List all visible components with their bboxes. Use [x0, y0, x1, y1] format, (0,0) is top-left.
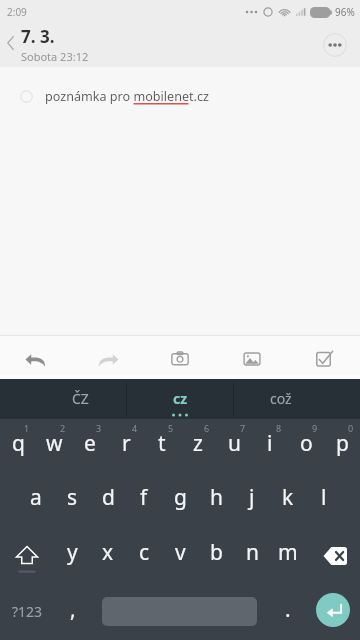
button[interactable]: m	[270, 528, 306, 583]
button[interactable]: což	[233, 379, 360, 419]
button[interactable]: j	[234, 473, 270, 528]
staticText: r	[122, 429, 131, 458]
staticText: i	[267, 429, 273, 458]
button[interactable]: n	[234, 528, 270, 583]
staticText: l	[321, 483, 327, 512]
button[interactable]: t	[144, 419, 180, 473]
button[interactable]: Shift	[0, 528, 54, 583]
button[interactable]: l	[306, 473, 342, 528]
button[interactable]: h	[198, 473, 234, 528]
staticText: w	[46, 429, 63, 458]
staticText: x	[102, 538, 114, 567]
button[interactable]: f	[126, 473, 162, 528]
staticText: ,	[70, 595, 76, 624]
button[interactable]: e	[72, 419, 108, 473]
staticText: 96%	[335, 5, 355, 19]
button[interactable]: k	[270, 473, 306, 528]
staticText: e	[84, 429, 96, 458]
button[interactable]: w	[36, 419, 72, 473]
staticText: 8	[276, 422, 282, 434]
button[interactable]: Redo	[72, 336, 144, 375]
staticText: o	[300, 429, 313, 458]
staticText: 6	[204, 422, 210, 434]
staticText: .	[285, 595, 291, 624]
staticText: n	[246, 538, 259, 567]
staticText: ?123	[12, 602, 43, 621]
staticText: v	[175, 538, 186, 567]
button[interactable]: Insert image	[216, 336, 288, 375]
staticText: d	[102, 483, 115, 512]
staticText: 0	[348, 422, 354, 434]
staticText: z	[193, 429, 203, 458]
staticText: 7. 3.	[21, 25, 55, 48]
button[interactable]: g	[162, 473, 198, 528]
staticText: 7	[240, 422, 246, 434]
staticText: 1	[24, 422, 30, 434]
button[interactable]: s	[54, 473, 90, 528]
button[interactable]: v	[162, 528, 198, 583]
staticText: cz	[173, 389, 188, 408]
staticText: m	[278, 538, 298, 567]
button[interactable]: Camera	[144, 336, 216, 375]
button[interactable]: ČZ	[0, 379, 126, 419]
button[interactable]: More options	[318, 28, 352, 62]
staticText: j	[249, 483, 255, 512]
button[interactable]: poznámka pro mobilenet.cz	[0, 88, 360, 105]
staticText: 9	[312, 422, 318, 434]
button[interactable]: x	[90, 528, 126, 583]
button[interactable]: i	[252, 419, 288, 473]
staticText: p	[336, 429, 349, 458]
staticText: q	[12, 429, 25, 458]
staticText: 5	[168, 422, 174, 434]
button[interactable]: d	[90, 473, 126, 528]
staticText: a	[30, 483, 42, 512]
button[interactable]: Checklist	[288, 336, 360, 375]
button[interactable]: z	[180, 419, 216, 473]
staticText: 2:09	[7, 5, 27, 19]
staticText: c	[139, 538, 150, 567]
button[interactable]: Back	[0, 31, 23, 55]
button[interactable]: Undo	[0, 336, 72, 375]
staticText: u	[228, 429, 241, 458]
button[interactable]: o	[288, 419, 324, 473]
button[interactable]: r	[108, 419, 144, 473]
button[interactable]: cz	[126, 379, 233, 419]
staticText: k	[282, 483, 294, 512]
button[interactable]: u	[216, 419, 252, 473]
staticText: 2	[60, 422, 66, 434]
staticText: Sobota 23:12	[21, 49, 89, 64]
button[interactable]: y	[54, 528, 90, 583]
button[interactable]: ?123	[0, 583, 54, 640]
button[interactable]: q	[0, 419, 36, 473]
staticText: g	[174, 483, 187, 512]
staticText: f	[140, 483, 148, 512]
button[interactable]: c	[126, 528, 162, 583]
staticText: t	[158, 429, 166, 458]
staticText: ČZ	[72, 389, 89, 408]
button[interactable]: p	[324, 419, 360, 473]
button[interactable]: Enter	[316, 593, 350, 627]
button[interactable]: Comma	[54, 583, 102, 640]
staticText: což	[270, 389, 292, 408]
button[interactable]: b	[198, 528, 234, 583]
staticText: b	[210, 538, 223, 567]
staticText: y	[67, 538, 78, 567]
staticText: s	[67, 483, 78, 512]
staticText: 4	[132, 422, 138, 434]
staticText: h	[210, 483, 223, 512]
staticText: 3	[96, 422, 102, 434]
button[interactable]: a	[18, 473, 54, 528]
button[interactable]: Period	[257, 583, 304, 640]
staticText: poznámka pro mobilenet.cz	[45, 88, 209, 105]
button[interactable]: Backspace	[306, 528, 360, 583]
